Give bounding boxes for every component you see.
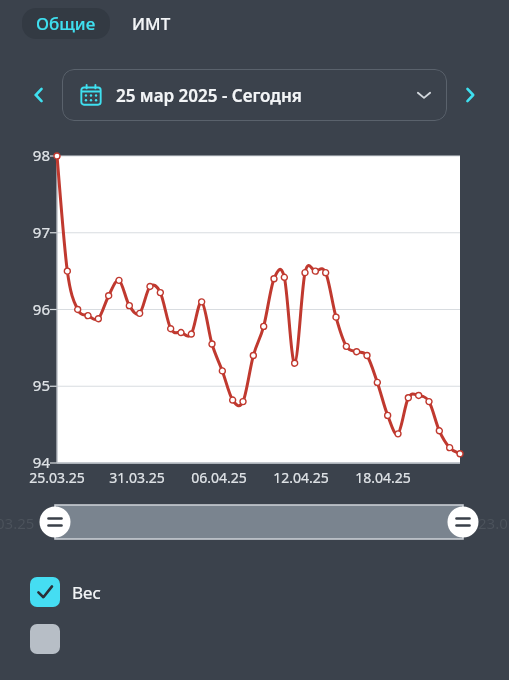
staticText: Вес: [72, 581, 101, 604]
staticText: 25.03.25: [21, 468, 93, 487]
staticText: ИМТ: [132, 12, 171, 35]
staticText: 25 мар 2025 - Сегодня: [116, 84, 302, 107]
button[interactable]: [0, 624, 509, 654]
staticText: 97: [16, 222, 50, 242]
staticText: 23.0: [478, 513, 508, 533]
staticText: 98: [16, 145, 50, 165]
button[interactable]: Следующий период: [457, 82, 483, 108]
button[interactable]: Общие: [22, 8, 110, 39]
staticText: Общие: [36, 12, 96, 35]
button[interactable]: 25 мар 2025 - Сегодня: [62, 69, 447, 121]
staticText: 06.04.25: [183, 468, 255, 487]
staticText: 31.03.25: [101, 468, 173, 487]
button[interactable]: Вес: [0, 570, 509, 614]
staticText: 03.25: [0, 513, 35, 533]
staticText: 12.04.25: [265, 468, 337, 487]
button[interactable]: Диапазон дат: [0, 496, 509, 548]
button[interactable]: ИМТ: [126, 8, 177, 39]
button[interactable]: Предыдущий период: [26, 82, 52, 108]
staticText: 18.04.25: [347, 468, 419, 487]
staticText: 94: [16, 452, 50, 472]
staticText: 95: [16, 375, 50, 395]
staticText: 96: [16, 299, 50, 319]
